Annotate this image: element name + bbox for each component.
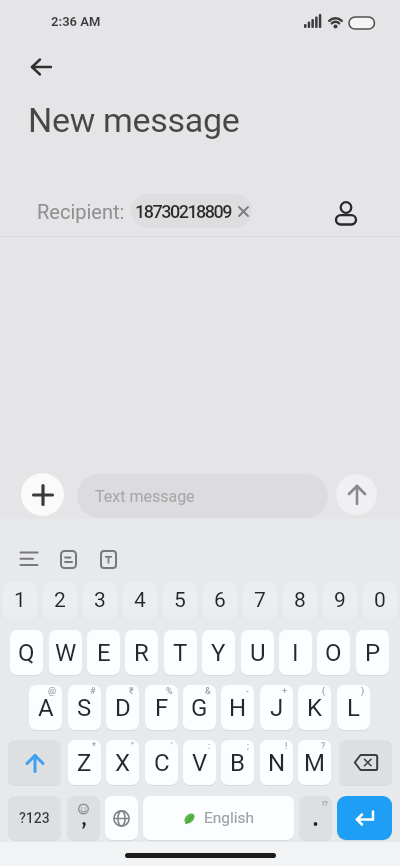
staticText: 4 xyxy=(134,588,146,613)
staticText: : xyxy=(208,741,211,752)
button[interactable]: English xyxy=(143,796,294,840)
button[interactable]: W xyxy=(49,630,82,675)
staticText: S xyxy=(77,694,92,722)
staticText: ? xyxy=(321,741,326,752)
button[interactable]: 1 xyxy=(0,582,40,619)
button[interactable]: Y xyxy=(202,630,235,675)
staticText: ?123 xyxy=(19,810,50,826)
staticText: 2 xyxy=(54,588,66,613)
button[interactable]: 2 xyxy=(40,582,80,619)
staticText: D xyxy=(115,694,131,722)
button[interactable] xyxy=(53,544,83,574)
button[interactable]: 3 xyxy=(80,582,120,619)
button[interactable] xyxy=(21,473,64,516)
button[interactable] xyxy=(336,474,377,515)
button[interactable]: 7 xyxy=(240,582,280,619)
button[interactable]: G xyxy=(183,685,216,730)
staticText: 7 xyxy=(254,588,266,613)
staticText: ; xyxy=(247,741,249,752)
staticText: 3 xyxy=(94,588,106,613)
staticText: ) xyxy=(361,686,365,697)
button[interactable]: 5 xyxy=(160,582,200,619)
staticText: B xyxy=(230,749,245,777)
staticText: !? xyxy=(322,799,328,808)
button[interactable] xyxy=(337,796,392,840)
button[interactable]: V xyxy=(183,740,216,785)
button[interactable]: I xyxy=(279,630,312,675)
button[interactable]: D xyxy=(106,685,139,730)
button[interactable]: M xyxy=(298,740,331,785)
button[interactable] xyxy=(105,796,138,840)
staticText: Q xyxy=(18,639,35,667)
staticText: G xyxy=(191,694,208,722)
staticText: H xyxy=(229,694,247,722)
staticText: 5 xyxy=(174,588,186,613)
staticText: A xyxy=(38,694,54,722)
button[interactable] xyxy=(93,544,123,574)
button[interactable]: X xyxy=(106,740,139,785)
staticText: F xyxy=(155,694,169,722)
button[interactable] xyxy=(14,544,44,574)
staticText: T xyxy=(173,639,188,667)
staticText: English xyxy=(204,809,255,827)
button[interactable]: C xyxy=(145,740,178,785)
staticText: 6 xyxy=(214,588,226,613)
button[interactable]: ?123 xyxy=(8,796,61,840)
button[interactable]: P xyxy=(356,630,389,675)
button[interactable]: A xyxy=(29,685,62,730)
staticText: ₹ xyxy=(129,686,134,697)
staticText: K xyxy=(307,694,323,722)
staticText: Z xyxy=(77,749,92,777)
button[interactable]: Z xyxy=(68,740,101,785)
button[interactable]: S xyxy=(68,685,101,730)
button[interactable]: R xyxy=(125,630,158,675)
button[interactable]: O xyxy=(317,630,350,675)
staticText: - xyxy=(246,686,249,697)
staticText: % xyxy=(166,686,173,697)
staticText: W xyxy=(55,639,77,667)
staticText: R xyxy=(134,639,149,667)
staticText: 9 xyxy=(334,588,346,613)
staticText: ! xyxy=(285,741,288,752)
button[interactable]: 9 xyxy=(320,582,360,619)
button[interactable]: 8 xyxy=(280,582,320,619)
staticText: N xyxy=(268,749,286,777)
staticText: O xyxy=(325,639,342,667)
button[interactable]: U xyxy=(241,630,274,675)
button[interactable]: 4 xyxy=(120,582,160,619)
staticText: 8 xyxy=(294,588,306,613)
button[interactable]: H xyxy=(221,685,254,730)
staticText: + xyxy=(282,686,288,697)
staticText: " xyxy=(131,741,134,752)
button[interactable]: B xyxy=(221,740,254,785)
staticText: L xyxy=(347,694,360,722)
staticText: Y xyxy=(211,639,226,667)
button[interactable]: Text message xyxy=(77,474,328,518)
button[interactable]: 18730218809 xyxy=(131,194,252,228)
button[interactable]: 0 xyxy=(360,582,400,619)
button[interactable]: F xyxy=(145,685,178,730)
button[interactable] xyxy=(67,796,100,840)
button[interactable] xyxy=(339,740,392,785)
button[interactable]: T xyxy=(164,630,197,675)
staticText: Text message xyxy=(95,487,195,506)
button[interactable] xyxy=(8,740,61,785)
button[interactable]: !? xyxy=(299,796,332,840)
button[interactable]: N xyxy=(260,740,293,785)
staticText: I xyxy=(292,639,299,667)
button[interactable]: Q xyxy=(10,630,43,675)
staticText: ( xyxy=(322,686,326,697)
staticText: X xyxy=(115,749,131,777)
staticText: E xyxy=(97,639,111,667)
button[interactable] xyxy=(328,197,364,229)
staticText: ' xyxy=(171,741,173,752)
staticText: V xyxy=(192,749,208,777)
staticText: P xyxy=(365,639,381,667)
button[interactable]: J xyxy=(260,685,293,730)
button[interactable] xyxy=(18,44,64,90)
button[interactable]: E xyxy=(87,630,120,675)
button[interactable]: K xyxy=(298,685,331,730)
button[interactable]: 6 xyxy=(200,582,240,619)
staticText: C xyxy=(154,749,170,777)
button[interactable]: L xyxy=(337,685,370,730)
